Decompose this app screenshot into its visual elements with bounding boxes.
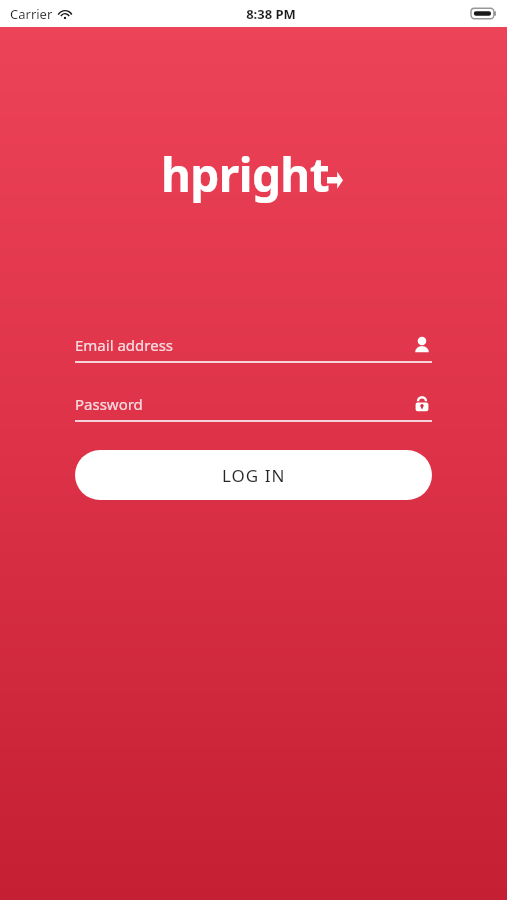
staticText: hpright (161, 143, 330, 206)
button[interactable]: Email address (75, 329, 432, 363)
other: Password (412, 394, 432, 414)
button[interactable]: Password (75, 388, 432, 422)
staticText: 8:38 PM (246, 5, 296, 23)
staticText: Password (75, 394, 412, 414)
staticText: Carrier (10, 5, 53, 23)
staticText: Email address (75, 335, 412, 355)
button[interactable]: LOG IN (75, 450, 432, 500)
staticText: LOG IN (222, 464, 286, 487)
other: Email address (412, 335, 432, 355)
